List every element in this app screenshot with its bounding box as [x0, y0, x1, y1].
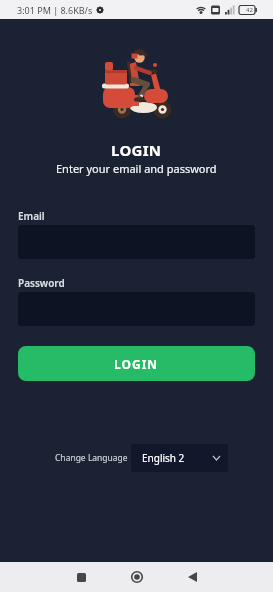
- staticText: English 2: [142, 451, 185, 465]
- button[interactable]: LOGIN: [18, 346, 255, 381]
- staticText: LOGIN: [114, 356, 159, 372]
- staticText: Password: [18, 276, 65, 290]
- staticText: 3:01 PM | 8.6KB/s: [17, 4, 93, 16]
- staticText: 42: [246, 6, 253, 14]
- button[interactable]: English 2: [131, 444, 228, 472]
- staticText: LOGIN: [111, 140, 162, 160]
- button[interactable]: [54, 562, 109, 592]
- staticText: Email: [18, 209, 45, 223]
- staticText: Enter your email and password: [56, 161, 217, 176]
- button[interactable]: [109, 562, 165, 592]
- staticText: Change Language: [55, 452, 128, 464]
- button[interactable]: [165, 562, 220, 592]
